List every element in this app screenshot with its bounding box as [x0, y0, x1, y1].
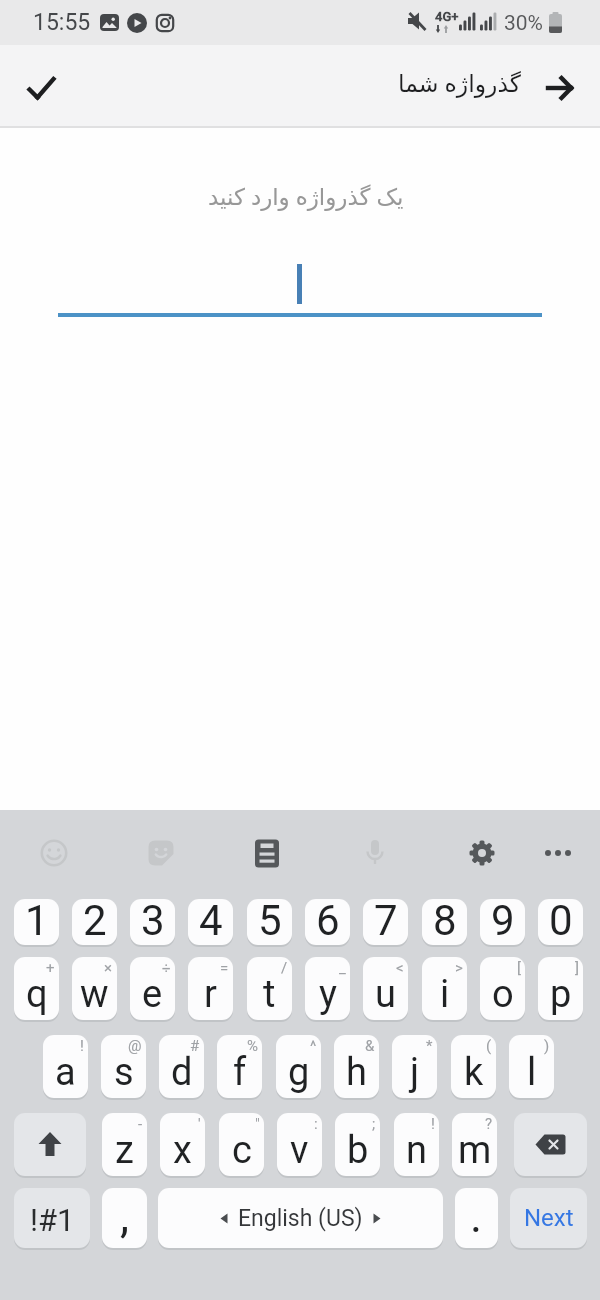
staticText: v [290, 1128, 309, 1173]
staticText: ' [198, 1115, 201, 1133]
staticText: > [455, 959, 463, 977]
staticText: ! [80, 1037, 84, 1055]
button[interactable] [243, 829, 291, 877]
button[interactable]: 9 [480, 899, 525, 945]
button[interactable]: 0 [538, 899, 583, 945]
staticText: k [464, 1050, 484, 1095]
button[interactable]: g [276, 1035, 321, 1098]
button[interactable] [351, 829, 399, 877]
button[interactable]: b [335, 1113, 380, 1176]
staticText: * [426, 1037, 433, 1055]
button[interactable]: v [277, 1113, 322, 1176]
button[interactable] [137, 829, 185, 877]
staticText: English (US) [238, 1205, 363, 1232]
button[interactable]: English (US) [158, 1188, 443, 1248]
staticText: i [440, 972, 450, 1017]
staticText: @ [128, 1037, 142, 1055]
button[interactable]: 2 [72, 899, 117, 945]
button[interactable]: k [451, 1035, 496, 1098]
staticText: = [220, 959, 229, 977]
button[interactable] [14, 1113, 86, 1176]
staticText: t [263, 972, 276, 1017]
button[interactable] [534, 829, 582, 877]
staticText: c [232, 1128, 252, 1173]
staticText: y [319, 972, 337, 1017]
button[interactable]: n [394, 1113, 439, 1176]
staticText: ! [431, 1115, 435, 1133]
button[interactable]: z [102, 1113, 147, 1176]
staticText: 8 [433, 899, 457, 942]
button[interactable]: 4 [188, 899, 233, 945]
button[interactable]: m [452, 1113, 497, 1176]
button[interactable]: 8 [422, 899, 467, 945]
button[interactable]: 6 [305, 899, 350, 945]
staticText: < [396, 959, 404, 977]
button[interactable]: !#1 [14, 1188, 90, 1248]
button[interactable]: x [160, 1113, 205, 1176]
button[interactable]: l [509, 1035, 554, 1098]
staticText: p [550, 972, 572, 1017]
staticText: m [458, 1128, 492, 1173]
staticText: s [114, 1050, 134, 1095]
button[interactable] [14, 72, 70, 112]
button[interactable]: w [72, 957, 117, 1020]
staticText: ^ [310, 1037, 317, 1055]
button[interactable]: Next [510, 1188, 587, 1248]
staticText: x [173, 1128, 192, 1173]
staticText: b [347, 1128, 369, 1173]
button[interactable] [532, 65, 586, 111]
staticText: - [138, 1115, 143, 1133]
button[interactable]: d [159, 1035, 204, 1098]
staticText: 7 [374, 899, 398, 942]
staticText: f [233, 1050, 247, 1095]
button[interactable]: 1 [14, 899, 59, 945]
staticText: !#1 [30, 1202, 75, 1238]
staticText: z [115, 1128, 134, 1173]
staticText: & [365, 1037, 375, 1055]
staticText: r [204, 972, 217, 1017]
button[interactable]: r [188, 957, 233, 1020]
button[interactable]: , [102, 1188, 147, 1248]
staticText: 4 [199, 899, 223, 942]
button[interactable]: t [247, 957, 292, 1020]
staticText: , [120, 1189, 130, 1243]
button[interactable]: o [480, 957, 525, 1020]
button[interactable] [458, 829, 506, 877]
button[interactable]: e [130, 957, 175, 1020]
staticText: ÷ [162, 959, 171, 977]
staticText: 15:55 [33, 9, 91, 36]
button[interactable] [30, 829, 78, 877]
staticText: h [346, 1050, 367, 1095]
button[interactable]: 3 [130, 899, 175, 945]
button[interactable]: f [217, 1035, 262, 1098]
staticText: . [470, 1189, 483, 1243]
staticText: 1 [25, 899, 49, 942]
staticText: j [410, 1050, 420, 1095]
button[interactable]: i [422, 957, 467, 1020]
button[interactable]: u [363, 957, 408, 1020]
staticText: w [80, 972, 109, 1017]
staticText: گذرواژه شما [398, 67, 521, 99]
staticText: % [247, 1037, 258, 1055]
staticText: یک گذرواژه وارد کنید [208, 180, 404, 211]
button[interactable]: s [101, 1035, 146, 1098]
button[interactable]: q [14, 957, 59, 1020]
button[interactable]: h [334, 1035, 379, 1098]
button[interactable]: j [392, 1035, 437, 1098]
button[interactable]: . [455, 1188, 498, 1248]
staticText: ( [486, 1037, 492, 1055]
button[interactable]: 7 [363, 899, 408, 945]
staticText: g [288, 1050, 310, 1095]
button[interactable]: 5 [247, 899, 292, 945]
staticText: a [55, 1050, 76, 1095]
button[interactable]: y [305, 957, 350, 1020]
button[interactable]: a [43, 1035, 88, 1098]
button[interactable]: c [219, 1113, 264, 1176]
button[interactable] [514, 1113, 587, 1176]
staticText: Next [524, 1204, 574, 1232]
button[interactable]: p [538, 957, 583, 1020]
staticText: [ [517, 959, 521, 977]
staticText: × [104, 959, 113, 977]
staticText: # [190, 1037, 200, 1055]
